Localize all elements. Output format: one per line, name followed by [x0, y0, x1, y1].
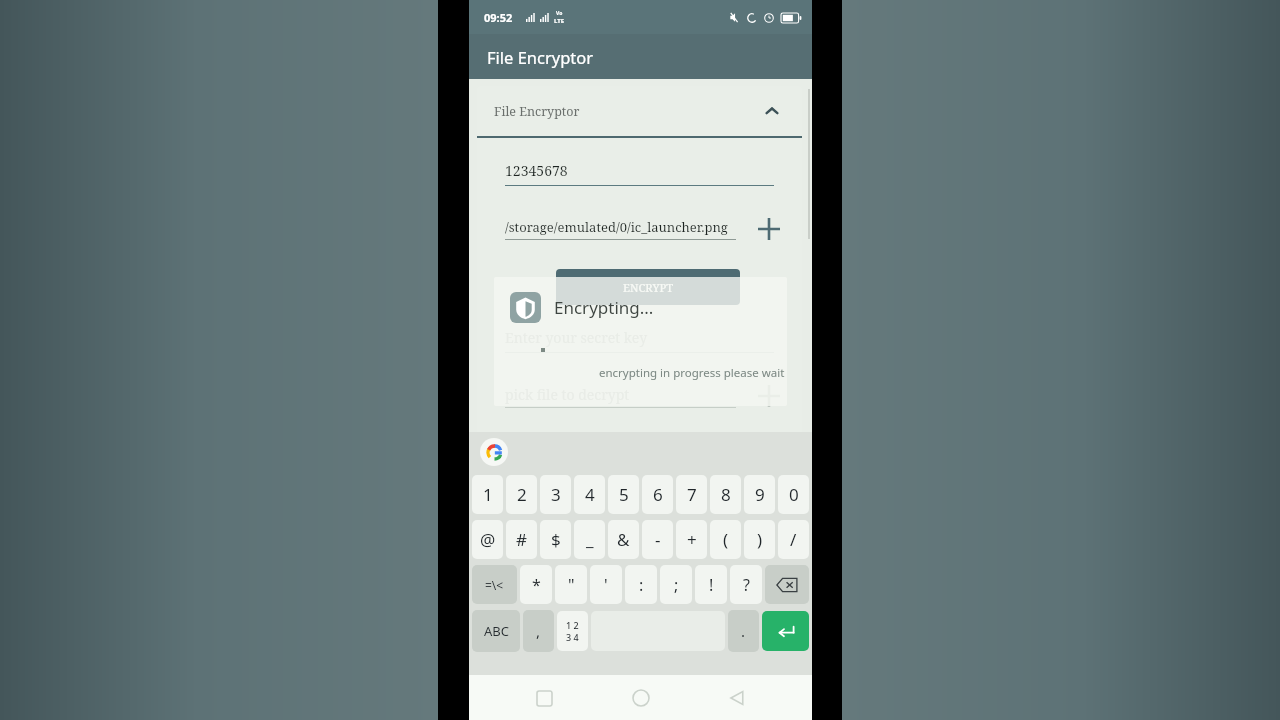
staticText: . — [741, 621, 746, 641]
staticText: encrypting in progress please wait — [599, 365, 785, 381]
button[interactable]: 5 — [608, 475, 639, 514]
button[interactable]: pick file to decrypt — [505, 385, 752, 408]
button[interactable]: 7 — [676, 475, 707, 514]
staticText: / — [790, 528, 797, 551]
staticText: 12345678 — [505, 161, 568, 180]
staticText: , — [536, 621, 541, 641]
staticText: LTE — [554, 17, 565, 25]
button[interactable]: * — [520, 565, 552, 604]
staticText: 1 — [483, 483, 493, 506]
button[interactable]: File Encryptor — [477, 86, 802, 136]
button[interactable]: " — [555, 565, 587, 604]
button[interactable]: 3 — [540, 475, 571, 514]
button[interactable]: ) — [744, 520, 775, 559]
staticText: =\< — [485, 577, 504, 593]
button[interactable]: . — [728, 610, 759, 652]
button[interactable]: 6 — [642, 475, 673, 514]
button[interactable]: 8 — [710, 475, 741, 514]
staticText: File Encryptor — [487, 46, 594, 68]
staticText: 8 — [721, 483, 731, 506]
staticText: ? — [743, 574, 750, 596]
staticText: 5 — [619, 483, 629, 506]
button[interactable]: /storage/emulated/0/ic_launcher.png — [505, 218, 752, 240]
button[interactable]: 4 — [574, 475, 605, 514]
button[interactable]: 2 — [506, 475, 537, 514]
button[interactable]: ' — [590, 565, 622, 604]
staticText: 3 — [551, 483, 561, 506]
staticText: /storage/emulated/0/ic_launcher.png — [505, 218, 728, 236]
button[interactable]: Pick file to decrypt — [752, 379, 786, 413]
staticText: # — [516, 528, 527, 551]
button[interactable]: 1 — [472, 475, 503, 514]
button[interactable]: =\< — [472, 565, 517, 604]
staticText: 6 — [653, 483, 663, 506]
button[interactable]: ! — [695, 565, 727, 604]
button[interactable]: 0 — [778, 475, 809, 514]
staticText: : — [639, 574, 644, 596]
staticText: ! — [709, 574, 714, 596]
button[interactable]: Pick file to encrypt — [752, 212, 786, 246]
button[interactable]: ? — [730, 565, 762, 604]
staticText: Enter your secret key — [505, 328, 648, 347]
staticText: 1 2 — [566, 619, 579, 631]
button[interactable]: , — [523, 610, 554, 652]
staticText: - — [655, 528, 661, 551]
staticText: Vo — [556, 10, 563, 17]
staticText: $ — [551, 528, 561, 551]
staticText: Encrypting... — [554, 296, 654, 319]
button[interactable]: 12345678 — [505, 161, 774, 186]
staticText: @ — [480, 528, 496, 551]
button[interactable]: & — [608, 520, 639, 559]
button[interactable]: + — [676, 520, 707, 559]
staticText: _ — [586, 528, 594, 551]
staticText: 4 — [585, 483, 595, 506]
button[interactable]: Home — [619, 676, 663, 720]
staticText: ( — [723, 528, 729, 551]
staticText: 2 — [517, 483, 527, 506]
button[interactable]: Enter — [762, 611, 809, 651]
button[interactable]: Back — [715, 676, 759, 720]
button[interactable]: : — [625, 565, 657, 604]
staticText: pick file to decrypt — [505, 385, 630, 404]
button[interactable]: Enter your secret key — [505, 328, 774, 353]
button[interactable]: $ — [540, 520, 571, 559]
other: Collapse — [759, 98, 785, 124]
staticText: File Encryptor — [494, 103, 759, 120]
staticText: ENCRYPT — [623, 280, 674, 295]
staticText: 09:52 — [484, 10, 513, 25]
staticText: ' — [604, 574, 608, 596]
button[interactable]: # — [506, 520, 537, 559]
staticText: " — [568, 574, 575, 596]
button[interactable]: - — [642, 520, 673, 559]
staticText: 0 — [789, 483, 799, 506]
staticText: 9 — [755, 483, 765, 506]
staticText: & — [617, 528, 630, 551]
button[interactable]: Backspace — [765, 565, 809, 604]
button[interactable]: _ — [574, 520, 605, 559]
staticText: + — [687, 528, 697, 551]
button[interactable]: / — [778, 520, 809, 559]
staticText: ABC — [484, 622, 509, 640]
button[interactable]: Google — [480, 438, 508, 466]
button[interactable]: 1 2 — [557, 611, 588, 651]
button[interactable]: 9 — [744, 475, 775, 514]
button[interactable]: ENCRYPT — [556, 269, 740, 305]
button[interactable]: ; — [660, 565, 692, 604]
staticText: ) — [757, 528, 763, 551]
button[interactable]: Recents — [522, 676, 566, 720]
staticText: * — [532, 574, 541, 596]
button[interactable]: ABC — [472, 610, 520, 652]
button[interactable]: ( — [710, 520, 741, 559]
button[interactable]: @ — [472, 520, 503, 559]
staticText: 3 4 — [566, 631, 579, 643]
staticText: 7 — [687, 483, 697, 506]
staticText: ; — [674, 574, 679, 596]
